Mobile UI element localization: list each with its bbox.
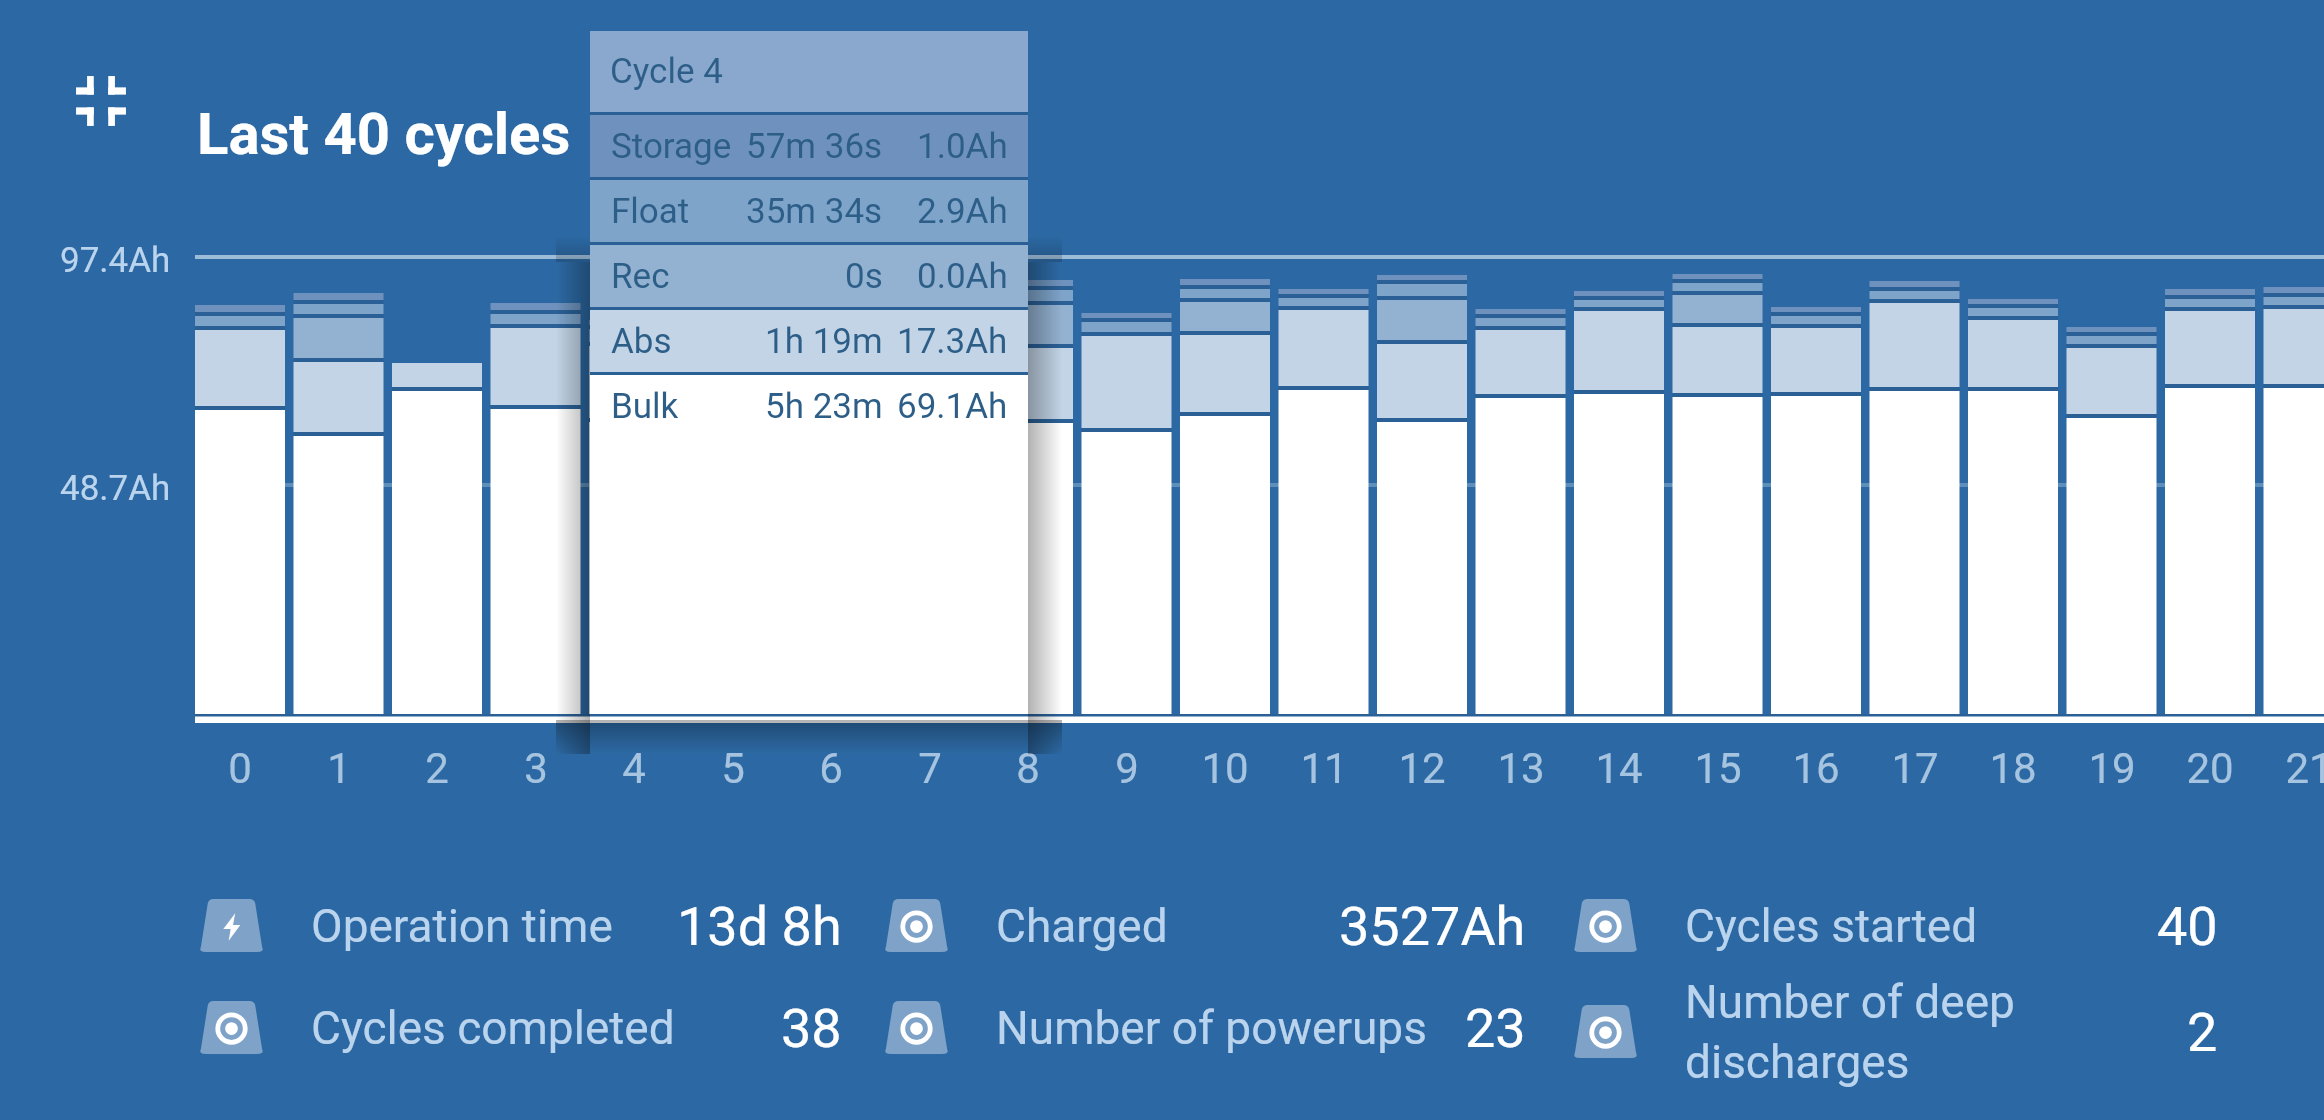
- staticText: Cycle 4: [610, 51, 723, 92]
- button[interactable]: Cycles started: [1572, 836, 2218, 1016]
- staticText: 5: [683, 744, 783, 793]
- staticText: 2.9Ah: [917, 191, 1008, 232]
- staticText: 2: [2187, 1001, 2218, 1064]
- staticText: 2: [387, 744, 487, 793]
- staticText: 21: [2259, 744, 2324, 793]
- staticText: 38: [781, 997, 842, 1060]
- button[interactable]: Cycles completed: [198, 938, 842, 1118]
- staticText: Last 40 cycles: [197, 100, 571, 168]
- staticText: Operation time: [311, 899, 613, 953]
- staticText: Cycles completed: [311, 1001, 675, 1055]
- staticText: 13: [1471, 744, 1571, 793]
- staticText: 6: [781, 744, 881, 793]
- staticText: 0s: [845, 256, 883, 297]
- staticText: 17.3Ah: [897, 321, 1008, 362]
- staticText: 48.7Ah: [60, 468, 171, 509]
- staticText: Cycles started: [1685, 899, 1978, 953]
- staticText: 1.0Ah: [917, 126, 1008, 167]
- staticText: 1: [289, 744, 389, 793]
- button[interactable]: Number of powerups: [883, 938, 1526, 1118]
- staticText: 18: [1963, 744, 2063, 793]
- staticText: Float: [611, 191, 690, 232]
- staticText: 19: [2062, 744, 2162, 793]
- button[interactable]: Operation time: [198, 836, 842, 1016]
- staticText: 40: [2157, 895, 2218, 958]
- staticText: 5h 23m: [765, 386, 883, 427]
- staticText: Bulk: [611, 386, 679, 427]
- staticText: 69.1Ah: [897, 386, 1008, 427]
- staticText: 1h 19m: [765, 321, 883, 362]
- staticText: 57m 36s: [746, 126, 883, 167]
- staticText: Charged: [996, 899, 1168, 953]
- staticText: 17: [1865, 744, 1965, 793]
- staticText: 15: [1668, 744, 1768, 793]
- button[interactable]: Charged: [883, 836, 1526, 1016]
- staticText: Number of powerups: [996, 1001, 1427, 1055]
- button[interactable]: Exit fullscreen: [72, 72, 130, 130]
- staticText: 13d 8h: [677, 895, 842, 958]
- staticText: 35m 34s: [746, 191, 883, 232]
- staticText: 10: [1175, 744, 1275, 793]
- staticText: 12: [1372, 744, 1472, 793]
- button[interactable]: Cycle 4: [590, 31, 1028, 714]
- staticText: Abs: [611, 321, 672, 362]
- staticText: Storage: [611, 126, 732, 167]
- staticText: 8: [978, 744, 1078, 793]
- staticText: 11: [1274, 744, 1374, 793]
- staticText: 9: [1077, 744, 1177, 793]
- staticText: 0: [190, 744, 290, 793]
- staticText: 0.0Ah: [917, 256, 1008, 297]
- button[interactable]: Number of deep discharges: [1572, 942, 2218, 1120]
- staticText: 97.4Ah: [60, 240, 171, 281]
- staticText: 16: [1766, 744, 1866, 793]
- staticText: 23: [1465, 997, 1526, 1060]
- staticText: 3: [486, 744, 586, 793]
- staticText: Rec: [611, 256, 670, 297]
- staticText: 20: [2160, 744, 2260, 793]
- staticText: Number of deep discharges: [1685, 975, 2015, 1090]
- staticText: 3527Ah: [1339, 895, 1526, 958]
- staticText: 14: [1569, 744, 1669, 793]
- staticText: 7: [880, 744, 980, 793]
- staticText: 4: [584, 744, 684, 793]
